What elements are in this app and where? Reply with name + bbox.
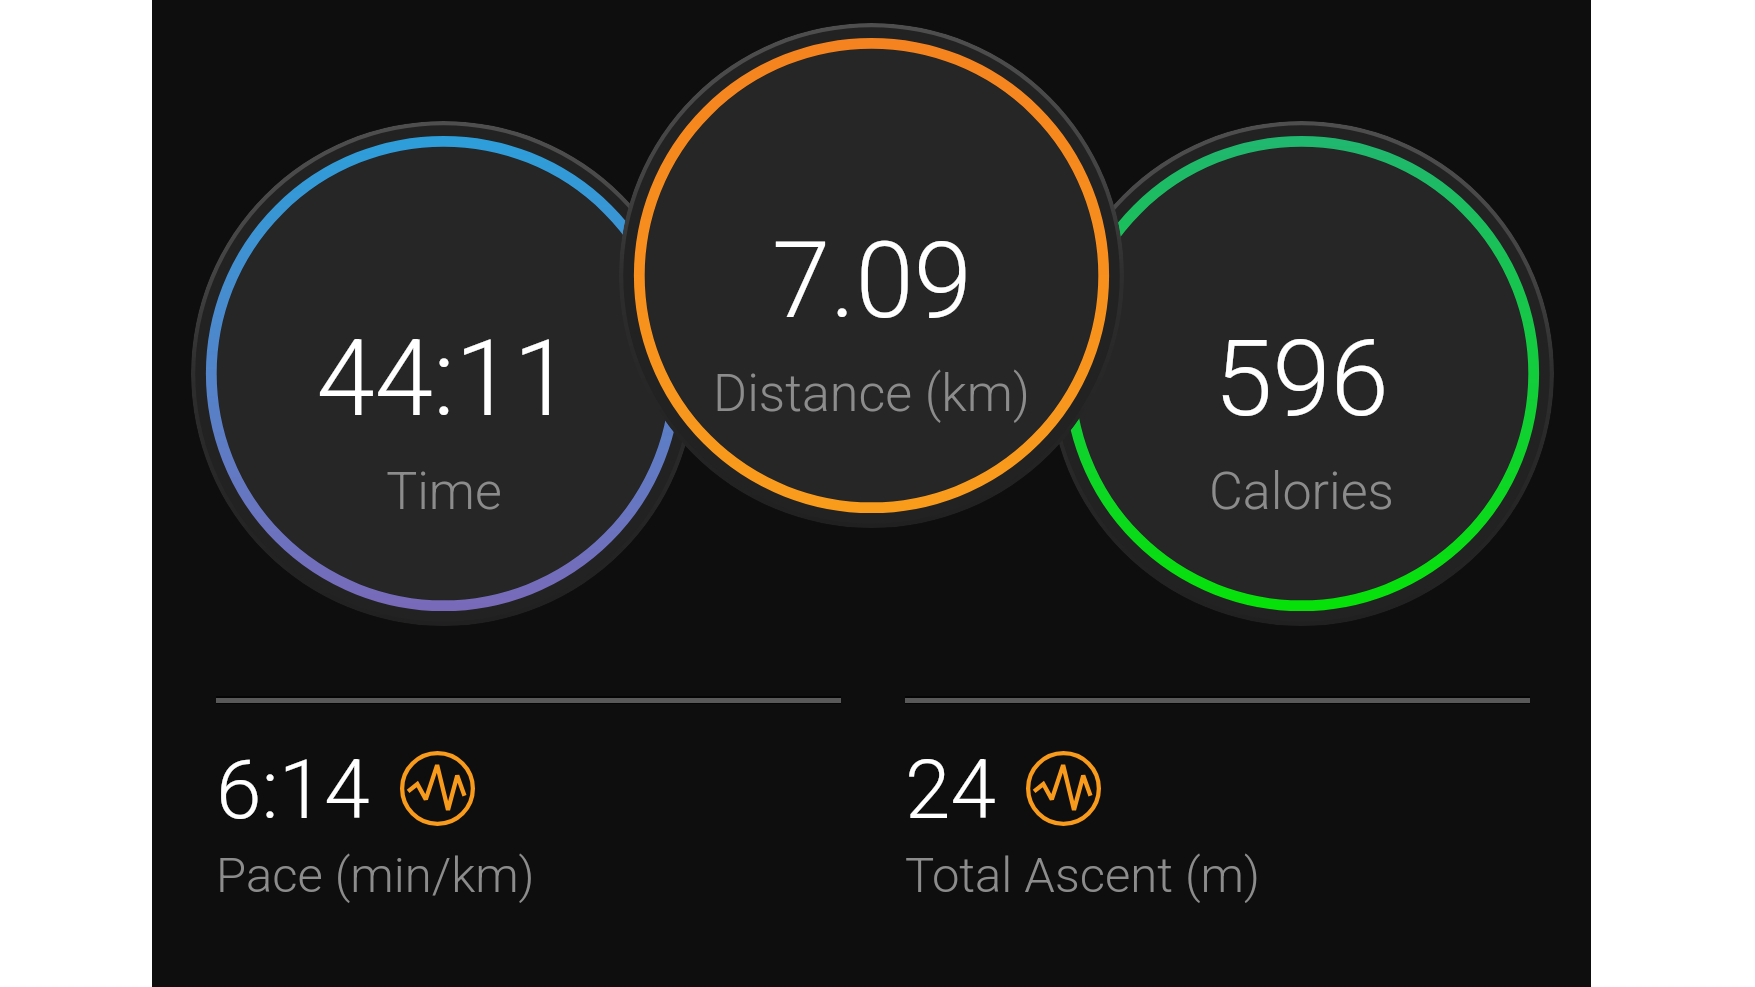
- staticText: 24: [905, 742, 996, 838]
- staticText: 44:11: [316, 318, 572, 441]
- staticText: 596: [1214, 318, 1389, 441]
- button[interactable]: 44:11: [191, 121, 696, 626]
- button[interactable]: 24: [905, 697, 1530, 932]
- staticText: Time: [386, 461, 502, 522]
- button[interactable]: 7.09: [619, 23, 1124, 528]
- other: Activity details: [400, 751, 475, 826]
- staticText: Pace (min/km): [216, 847, 535, 904]
- staticText: Total Ascent (m): [905, 847, 1261, 904]
- staticText: 6:14: [216, 742, 370, 838]
- other: Activity details: [1026, 751, 1101, 826]
- staticText: Calories: [1209, 461, 1394, 522]
- button[interactable]: 596: [1049, 121, 1554, 626]
- staticText: Distance (km): [713, 363, 1030, 424]
- staticText: 7.09: [772, 220, 972, 343]
- button[interactable]: 6:14: [216, 697, 841, 932]
